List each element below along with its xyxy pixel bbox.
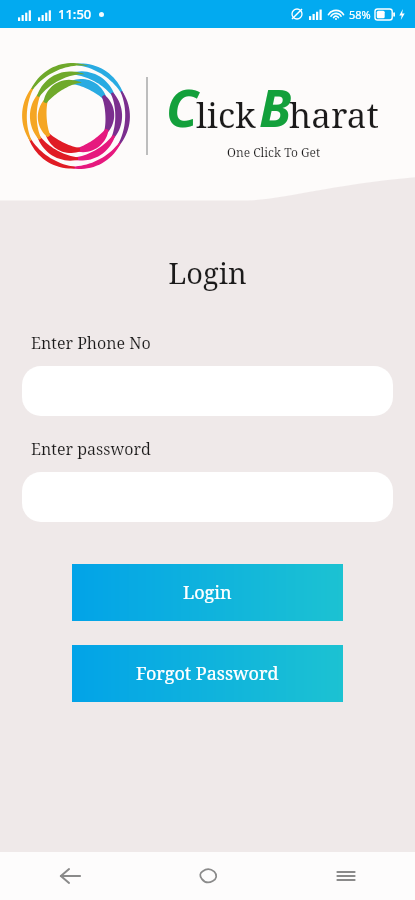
staticText: harat: [289, 91, 379, 139]
button[interactable]: Back: [0, 852, 139, 900]
staticText: lick: [196, 91, 256, 139]
button[interactable]: Forgot Password: [72, 645, 343, 702]
button[interactable]: Recent apps: [277, 852, 415, 900]
staticText: Login: [183, 580, 232, 605]
button[interactable]: Home: [139, 852, 277, 900]
staticText: Enter Phone No: [31, 332, 151, 354]
button[interactable]: Login: [72, 564, 343, 621]
staticText: B: [259, 71, 292, 142]
staticText: 11:50: [58, 5, 92, 23]
staticText: Enter password: [31, 438, 151, 460]
staticText: One Click To Get: [227, 144, 321, 160]
staticText: 58%: [349, 7, 371, 22]
staticText: Login: [0, 253, 415, 292]
staticText: Forgot Password: [136, 661, 279, 686]
staticText: C: [166, 71, 198, 142]
